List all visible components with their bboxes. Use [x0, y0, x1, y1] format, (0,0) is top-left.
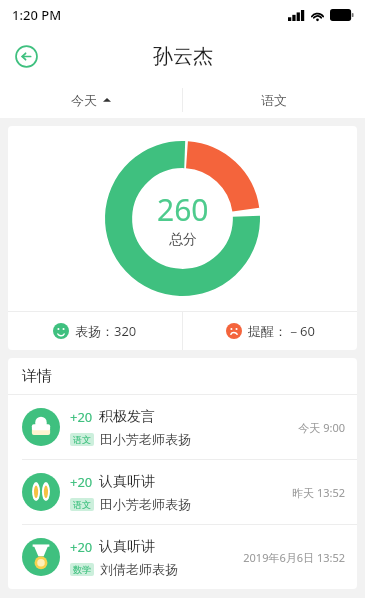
button[interactable]: +20 — [8, 395, 357, 459]
staticText: +20 — [70, 408, 93, 426]
staticText: 提醒：－60 — [248, 322, 315, 340]
staticText: 昨天 13:52 — [292, 485, 345, 500]
staticText: 孙云杰 — [153, 44, 213, 69]
button[interactable]: 表扬：320 — [8, 312, 182, 350]
staticText: 田小芳老师表扬 — [100, 496, 191, 512]
staticText: 田小芳老师表扬 — [100, 431, 191, 447]
staticText: 今天 — [71, 92, 97, 108]
staticText: 260 — [157, 189, 209, 230]
staticText: 语文 — [73, 434, 91, 445]
button[interactable]: 今天 — [0, 82, 182, 118]
staticText: +20 — [70, 538, 93, 556]
staticText: +20 — [70, 473, 93, 491]
staticText: 详情 — [22, 367, 52, 386]
staticText: 语文 — [261, 92, 287, 108]
staticText: 数学 — [73, 564, 91, 575]
staticText: 刘倩老师表扬 — [100, 561, 178, 577]
staticText: 1:20 PM — [12, 6, 62, 24]
staticText: 2019年6月6日 13:52 — [243, 550, 345, 565]
staticText: 认真听讲 — [99, 538, 155, 556]
staticText: 今天 9:00 — [298, 420, 345, 435]
staticText: 表扬：320 — [75, 322, 137, 340]
button[interactable]: +20 — [8, 525, 357, 589]
button[interactable]: +20 — [8, 460, 357, 524]
staticText: 语文 — [73, 499, 91, 510]
staticText: 认真听讲 — [99, 473, 155, 491]
button[interactable]: 语文 — [183, 82, 365, 118]
button[interactable]: Back — [9, 39, 43, 73]
staticText: 积极发言 — [99, 408, 155, 426]
button[interactable]: 提醒：－60 — [183, 312, 357, 350]
staticText: 总分 — [169, 231, 197, 249]
